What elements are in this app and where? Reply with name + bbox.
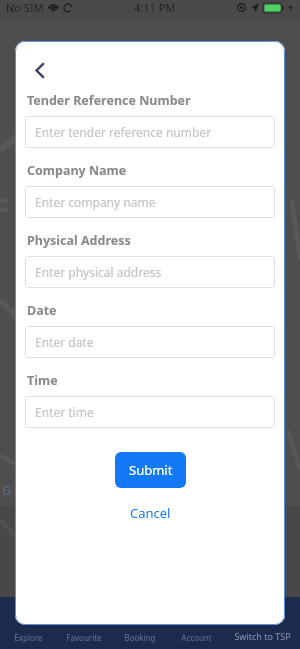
button[interactable]: Enter physical address xyxy=(25,256,275,288)
staticText: Enter tender reference number xyxy=(35,124,212,140)
staticText: Switch to TSP xyxy=(234,630,291,642)
button[interactable]: Back xyxy=(25,55,55,85)
staticText: No SIM xyxy=(6,0,44,15)
staticText: Booking xyxy=(124,632,156,643)
staticText: Enter company name xyxy=(35,194,156,210)
staticText: Favourite xyxy=(66,632,102,643)
button[interactable]: Favourite xyxy=(56,597,112,649)
button[interactable]: Enter tender reference number xyxy=(25,116,275,148)
button[interactable]: Enter date xyxy=(25,326,275,358)
staticText: Tender Reference Number xyxy=(27,92,191,109)
button[interactable]: Submit xyxy=(115,452,186,488)
button[interactable]: Enter company name xyxy=(25,186,275,218)
staticText: lia da xyxy=(0,196,9,214)
staticText: Physical Address xyxy=(27,232,131,249)
staticText: G xyxy=(2,481,12,499)
staticText: Company Name xyxy=(27,162,127,179)
staticText: 4:11 PM xyxy=(134,0,176,15)
staticText: Date xyxy=(27,302,57,319)
button[interactable]: Account xyxy=(168,597,224,649)
staticText: Account xyxy=(181,632,212,643)
staticText: Enter physical address xyxy=(35,264,162,280)
staticText: Explore xyxy=(14,632,43,643)
button[interactable]: Switch to TSP xyxy=(224,597,300,649)
button[interactable]: Enter time xyxy=(25,396,275,428)
button[interactable]: Cancel xyxy=(122,500,179,526)
staticText: Time xyxy=(27,372,58,389)
staticText: Cancel xyxy=(130,504,171,522)
button[interactable]: Booking xyxy=(112,597,168,649)
staticText: Enter date xyxy=(35,334,94,350)
staticText: Submit xyxy=(129,461,173,479)
button[interactable]: Explore xyxy=(0,597,56,649)
staticText: Enter time xyxy=(35,404,94,420)
